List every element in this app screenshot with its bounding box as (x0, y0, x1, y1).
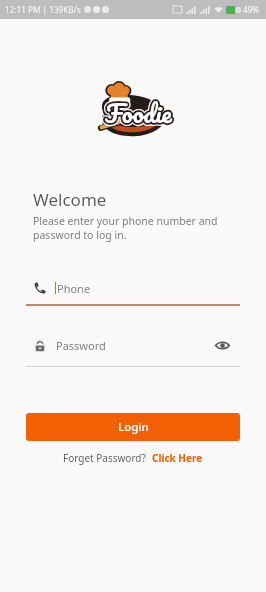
staticText: 49% (243, 4, 260, 15)
staticText: Foodie (105, 92, 172, 134)
staticText: 12:11 PM | 139KB/s (5, 4, 81, 15)
staticText: Please enter your phone number and passw… (33, 214, 218, 242)
staticText: Phone (57, 281, 91, 296)
button[interactable]: Click Here (152, 451, 203, 465)
button[interactable]: Show password (213, 336, 232, 355)
staticText: Click Here (152, 451, 203, 465)
button[interactable]: Login (26, 413, 240, 441)
staticText: Login (118, 419, 149, 435)
staticText: Password (56, 338, 106, 353)
staticText: Foodie (105, 92, 172, 134)
staticText: Welcome (33, 188, 107, 211)
staticText: Foodie (105, 92, 172, 134)
staticText: Forget Password? (63, 451, 146, 465)
